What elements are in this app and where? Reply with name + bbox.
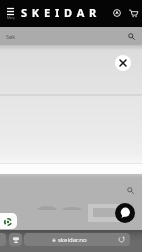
button[interactable]: Faner <box>9 233 22 246</box>
button[interactable]: Chat <box>115 203 135 223</box>
staticText: Meny <box>7 16 15 20</box>
staticText: Søk <box>6 33 16 40</box>
button[interactable]: Min konto <box>109 5 125 21</box>
button[interactable]: Lukk <box>115 55 131 71</box>
button[interactable]: Søk <box>0 27 142 45</box>
button[interactable]: Handlekurv <box>125 5 141 21</box>
staticText: skeidar.no <box>58 236 87 244</box>
button[interactable]: Meny <box>2 0 19 27</box>
button[interactable]: skeidar.no <box>24 233 130 246</box>
button[interactable]: Søk <box>124 184 137 197</box>
staticText: SKEIDAR <box>21 5 102 20</box>
button[interactable]: Informasjonskapsler <box>0 213 17 229</box>
button[interactable]: Last inn på nytt <box>117 235 126 244</box>
